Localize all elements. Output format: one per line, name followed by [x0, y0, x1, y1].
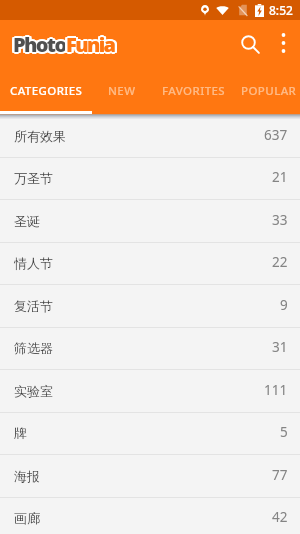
- button[interactable]: 情人节: [0, 242, 300, 285]
- staticText: Photo: [13, 29, 66, 56]
- staticText: 情人节: [14, 255, 53, 271]
- button[interactable]: 所有效果: [0, 115, 300, 158]
- staticText: Photo: [13, 31, 66, 58]
- staticText: 33: [272, 211, 288, 229]
- button[interactable]: 实验室: [0, 370, 300, 413]
- staticText: 21: [272, 168, 288, 186]
- staticText: Funia: [68, 32, 117, 59]
- staticText: Photo: [11, 30, 64, 57]
- button[interactable]: CATEGORIES: [0, 71, 93, 111]
- staticText: 31: [272, 338, 288, 356]
- staticText: Photo: [12, 30, 65, 57]
- staticText: 牌: [14, 425, 27, 441]
- staticText: Photo: [12, 32, 65, 59]
- staticText: Funia: [67, 32, 116, 59]
- button[interactable]: Search: [228, 22, 272, 66]
- staticText: 实验室: [14, 383, 53, 399]
- staticText: FAVORITES: [162, 83, 226, 99]
- staticText: CATEGORIES: [10, 83, 83, 99]
- staticText: NEW: [108, 83, 136, 99]
- staticText: 5: [280, 423, 288, 441]
- staticText: Funia: [64, 30, 113, 57]
- button[interactable]: 筛选器: [0, 327, 300, 370]
- staticText: 42: [272, 508, 288, 526]
- button[interactable]: POPULAR: [238, 71, 300, 111]
- staticText: Photo: [11, 31, 64, 58]
- staticText: Photo: [15, 32, 68, 59]
- staticText: Funia: [64, 31, 113, 58]
- staticText: Funia: [66, 29, 115, 56]
- button[interactable]: 牌: [0, 412, 300, 455]
- staticText: 海报: [14, 468, 40, 484]
- staticText: 圣诞: [14, 213, 40, 229]
- staticText: Photo: [14, 30, 67, 57]
- staticText: Photo: [14, 32, 67, 59]
- staticText: Funia: [66, 31, 115, 58]
- staticText: 111: [264, 381, 288, 399]
- staticText: 所有效果: [14, 128, 66, 144]
- staticText: Funia: [67, 30, 116, 57]
- staticText: 万圣节: [14, 170, 53, 186]
- staticText: 8:52: [269, 2, 293, 18]
- staticText: Funia: [68, 30, 117, 57]
- staticText: 637: [264, 126, 288, 144]
- staticText: 筛选器: [14, 340, 53, 356]
- button[interactable]: FAVORITES: [150, 71, 238, 111]
- staticText: Funia: [64, 32, 113, 59]
- staticText: Funia: [65, 32, 114, 59]
- staticText: 9: [280, 296, 288, 314]
- staticText: Photo: [13, 33, 66, 60]
- staticText: POPULAR: [241, 83, 297, 99]
- staticText: 画廊: [14, 510, 40, 526]
- button[interactable]: More options: [267, 21, 299, 65]
- staticText: Photo: [11, 32, 64, 59]
- button[interactable]: 圣诞: [0, 200, 300, 243]
- staticText: 77: [272, 466, 288, 484]
- staticText: 22: [272, 253, 288, 271]
- button[interactable]: 万圣节: [0, 157, 300, 200]
- staticText: Funia: [65, 30, 114, 57]
- staticText: 复活节: [14, 298, 53, 314]
- button[interactable]: 海报: [0, 455, 300, 498]
- staticText: Funia: [68, 31, 117, 58]
- button[interactable]: 复活节: [0, 285, 300, 328]
- button[interactable]: NEW: [93, 71, 150, 111]
- staticText: Photo: [15, 31, 68, 58]
- staticText: Photo: [15, 30, 68, 57]
- staticText: Funia: [66, 33, 115, 60]
- button[interactable]: 画廊: [0, 497, 300, 534]
